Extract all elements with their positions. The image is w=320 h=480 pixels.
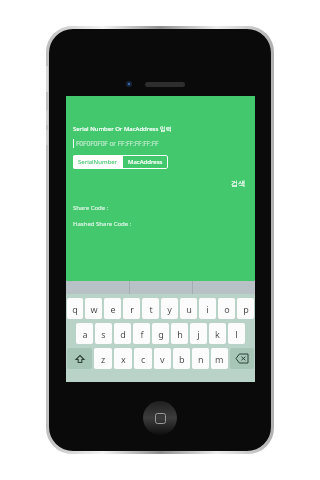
button[interactable]: k [209, 323, 226, 344]
button[interactable]: x [114, 348, 132, 369]
button[interactable]: s [95, 323, 112, 344]
button[interactable]: Home [143, 401, 177, 435]
staticText: d [120, 328, 126, 340]
staticText: r [130, 303, 134, 315]
staticText: j [197, 328, 200, 340]
staticText: F0F0F0F0F or FF:FF:FF:FF:FF [76, 139, 159, 148]
button[interactable]: b [173, 348, 190, 369]
staticText: u [186, 303, 192, 315]
staticText: x [121, 353, 126, 365]
staticText: 검색 [231, 179, 245, 188]
staticText: q [72, 303, 78, 315]
button[interactable]: z [94, 348, 112, 369]
staticText: SerialNumber [78, 158, 118, 166]
button[interactable]: t [142, 298, 159, 319]
button[interactable]: m [211, 348, 228, 369]
staticText: i [206, 303, 209, 315]
button[interactable]: f [133, 323, 150, 344]
button[interactable]: n [192, 348, 209, 369]
button[interactable]: o [218, 298, 235, 319]
button[interactable]: Backspace [230, 348, 254, 369]
staticText: a [82, 328, 88, 340]
button[interactable]: l [228, 323, 245, 344]
staticText: k [215, 328, 220, 340]
staticText: Serial Number Or MacAddress 입력 [73, 125, 172, 133]
staticText: p [243, 303, 249, 315]
button[interactable]: j [190, 323, 207, 344]
button[interactable]: d [114, 323, 131, 344]
button[interactable]: SerialNumber [73, 155, 123, 169]
staticText: m [215, 353, 224, 365]
staticText: g [158, 328, 164, 340]
button[interactable]: v [154, 348, 171, 369]
staticText: n [198, 353, 204, 365]
button[interactable]: e [104, 298, 121, 319]
staticText: l [235, 328, 238, 340]
button[interactable]: Shift [67, 348, 92, 369]
staticText: y [167, 303, 172, 315]
button[interactable]: MacAddress [123, 155, 168, 169]
staticText: z [101, 353, 106, 365]
staticText: e [110, 303, 116, 315]
button[interactable]: c [134, 348, 152, 369]
staticText: v [160, 353, 165, 365]
staticText: Share Code : [73, 204, 109, 212]
staticText: w [90, 303, 98, 315]
staticText: Hashed Share Code : [73, 220, 132, 228]
staticText: t [149, 303, 153, 315]
button[interactable]: q [67, 298, 83, 319]
staticText: b [179, 353, 185, 365]
button[interactable]: u [180, 298, 197, 319]
button[interactable]: y [161, 298, 178, 319]
button[interactable]: w [85, 298, 102, 319]
button[interactable]: h [171, 323, 188, 344]
button[interactable]: r [123, 298, 140, 319]
button[interactable]: p [237, 298, 254, 319]
staticText: f [140, 328, 144, 340]
staticText: c [141, 353, 146, 365]
button[interactable]: g [152, 323, 169, 344]
button[interactable]: i [199, 298, 216, 319]
staticText: MacAddress [128, 158, 163, 166]
button[interactable]: a [76, 323, 93, 344]
staticText: o [224, 303, 230, 315]
staticText: h [177, 328, 183, 340]
button[interactable]: 검색 [228, 177, 248, 190]
staticText: s [101, 328, 106, 340]
